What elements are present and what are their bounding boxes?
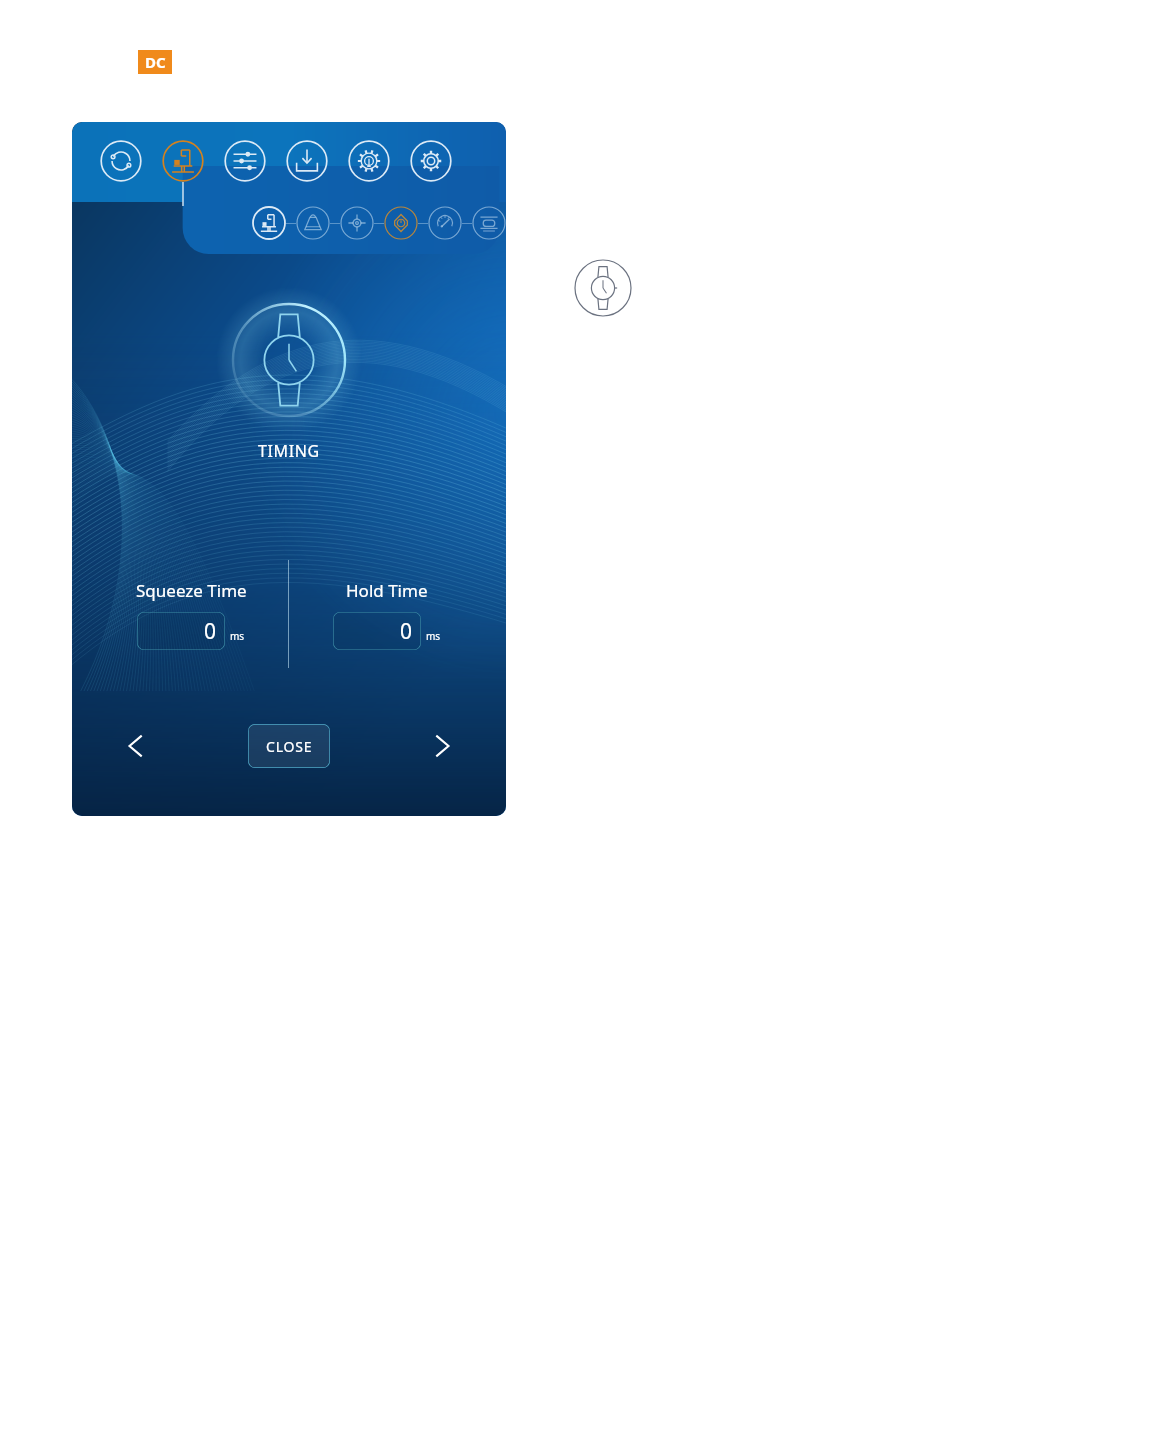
button[interactable]: Sliders xyxy=(224,140,266,182)
staticText: CLOSE xyxy=(266,737,313,756)
button[interactable]: Download xyxy=(286,140,328,182)
button[interactable]: Gauge xyxy=(428,206,462,240)
button[interactable]: Timing xyxy=(384,206,418,240)
staticText: Squeeze Time xyxy=(136,579,247,602)
button[interactable]: Machine xyxy=(252,206,286,240)
button[interactable]: Next xyxy=(420,724,464,768)
button[interactable]: Target xyxy=(340,206,374,240)
staticText: 0 xyxy=(204,617,217,646)
staticText: ms xyxy=(426,629,441,643)
button[interactable]: Weight xyxy=(296,206,330,240)
button[interactable]: 0 xyxy=(333,612,421,650)
staticText: 0 xyxy=(400,617,413,646)
button[interactable]: DC logo xyxy=(138,50,172,74)
staticText: DC xyxy=(145,52,166,72)
button[interactable]: Diagnostics xyxy=(348,140,390,182)
staticText: Hold Time xyxy=(346,579,428,602)
button[interactable]: 0 xyxy=(137,612,225,650)
staticText: TIMING xyxy=(258,440,320,462)
button[interactable]: CLOSE xyxy=(248,724,330,768)
button[interactable]: Previous xyxy=(114,724,158,768)
staticText: ms xyxy=(230,629,245,643)
button[interactable]: Tray xyxy=(472,206,506,240)
button[interactable]: Sync xyxy=(100,140,142,182)
button[interactable]: Watch xyxy=(574,259,632,317)
button[interactable]: Settings xyxy=(410,140,452,182)
button[interactable]: Machine xyxy=(162,140,204,182)
